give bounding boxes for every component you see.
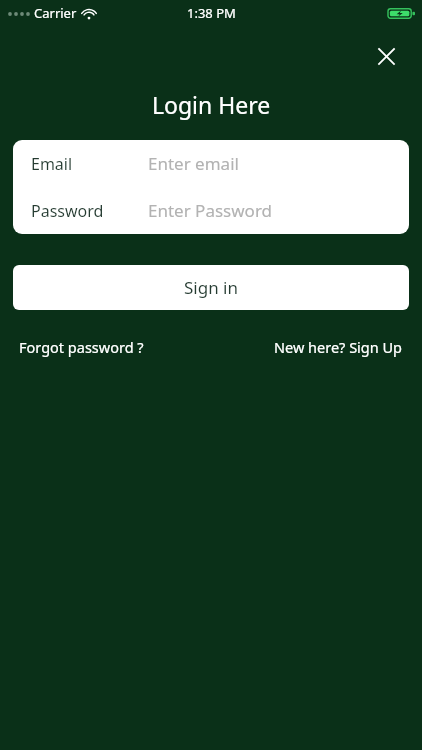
- button[interactable]: Email: [13, 140, 409, 187]
- staticText: 1:38 PM: [187, 4, 236, 22]
- staticText: Login Here: [152, 89, 271, 120]
- staticText: Enter email: [148, 152, 239, 175]
- button[interactable]: New here? Sign Up: [274, 337, 403, 357]
- button[interactable]: Forgot password ?: [19, 337, 144, 357]
- staticText: Sign in: [184, 276, 238, 299]
- staticText: New here? Sign Up: [274, 337, 403, 357]
- staticText: Carrier: [34, 4, 77, 22]
- staticText: Password: [31, 200, 104, 222]
- button[interactable]: Sign in: [13, 265, 409, 310]
- button[interactable]: Close: [364, 34, 408, 78]
- staticText: Enter Password: [148, 199, 273, 222]
- staticText: Forgot password ?: [19, 337, 144, 357]
- staticText: Email: [31, 153, 73, 175]
- button[interactable]: Password: [13, 187, 409, 234]
